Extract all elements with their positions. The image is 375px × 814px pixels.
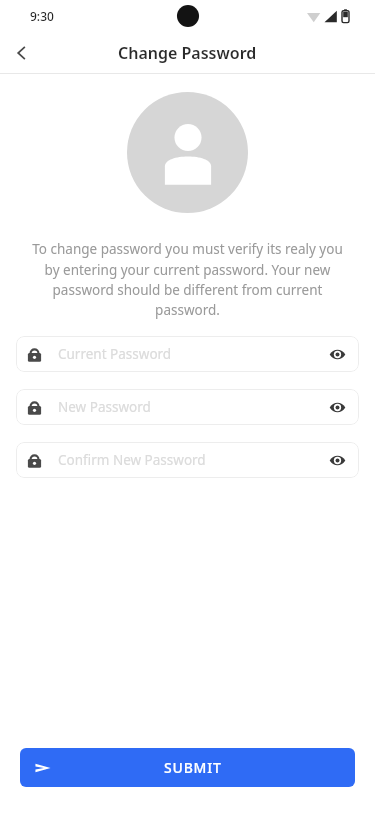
button[interactable]: New Password [16,389,359,425]
button[interactable]: Show password [319,442,355,478]
button[interactable]: Show password [319,336,355,372]
staticText: Current Password [58,345,319,363]
staticText: New Password [58,398,319,416]
button[interactable]: Back [0,32,44,73]
button[interactable]: Confirm New Password [16,442,359,478]
staticText: To change password you must verify its r… [24,240,351,319]
button[interactable]: Current Password [16,336,359,372]
staticText: SUBMIT [164,758,222,777]
staticText: 9:30 [30,8,54,24]
staticText: Change Password [118,42,257,64]
button[interactable]: Show password [319,389,355,425]
staticText: Confirm New Password [58,451,319,469]
button[interactable]: SUBMIT [20,748,355,787]
